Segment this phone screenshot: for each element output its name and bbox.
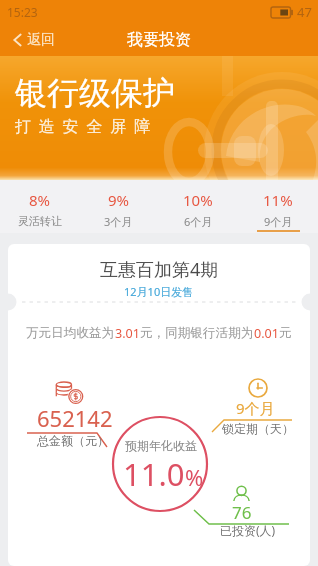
staticText: 76 — [232, 501, 252, 524]
button[interactable]: 10% — [158, 180, 238, 233]
staticText: 652142 — [37, 403, 113, 433]
staticText: 银行级保护 — [15, 73, 175, 113]
staticText: 3个月 — [104, 214, 133, 229]
button[interactable]: Back — [0, 24, 67, 56]
staticText: 0.01 — [254, 325, 279, 342]
staticText: 打造安全屏障 — [15, 117, 158, 137]
staticText: 锁定期（天） — [222, 421, 294, 436]
staticText: 返回 — [27, 31, 55, 49]
staticText: 8% — [29, 190, 51, 210]
button[interactable]: 8% — [0, 180, 79, 233]
staticText: 11% — [263, 190, 293, 210]
staticText: 已投资(人) — [220, 522, 276, 538]
staticText: 6个月 — [184, 214, 213, 229]
staticText: 总金额（元） — [37, 433, 109, 448]
staticText: 12月10日发售 — [124, 284, 194, 299]
staticText: 10% — [183, 190, 213, 210]
staticText: 3.01 — [115, 325, 140, 342]
staticText: % — [185, 462, 204, 492]
other: Back — [13, 33, 22, 47]
staticText: 万元日均收益为 — [26, 325, 115, 341]
staticText: 灵活转让 — [18, 214, 62, 228]
staticText: 元，同期银行活期为 — [140, 325, 254, 341]
button[interactable]: 11% — [238, 180, 318, 233]
staticText: 9个月 — [264, 214, 293, 229]
other: Battery — [271, 7, 293, 18]
staticText: 9% — [108, 190, 130, 210]
staticText: 互惠百加第4期 — [100, 257, 219, 282]
staticText: 15:23 — [7, 4, 38, 20]
staticText: 11.0 — [123, 453, 185, 495]
staticText: 预期年化收益 — [125, 438, 197, 453]
staticText: 47 — [297, 3, 312, 21]
staticText: 元 — [279, 325, 292, 341]
staticText: 9个月 — [236, 398, 275, 418]
button[interactable]: 9% — [79, 180, 158, 233]
staticText: 我要投资 — [127, 30, 191, 50]
